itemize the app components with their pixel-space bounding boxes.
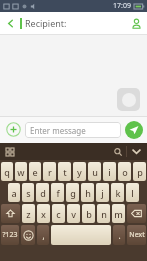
button[interactable]: z: [22, 204, 35, 223]
button[interactable]: Shift: [1, 204, 20, 223]
button[interactable]: Back: [0, 13, 20, 33]
button[interactable]: h: [81, 183, 94, 202]
staticText: x: [41, 208, 46, 220]
staticText: k: [115, 187, 121, 199]
staticText: h: [85, 187, 91, 199]
staticText: s: [26, 187, 31, 199]
button[interactable]: Recipient:: [25, 12, 125, 34]
button[interactable]: r: [43, 162, 56, 181]
button[interactable]: Add attachment: [4, 120, 23, 139]
staticText: b: [86, 208, 92, 220]
staticText: 17:09: [113, 1, 131, 11]
button[interactable]: Send: [125, 121, 143, 139]
button[interactable]: x: [37, 204, 50, 223]
button[interactable]: ?123: [1, 225, 19, 245]
button[interactable]: e: [29, 162, 41, 181]
staticText: q: [4, 166, 10, 178]
staticText: Recipient:: [25, 17, 67, 29]
button[interactable]: o: [118, 162, 131, 181]
button[interactable]: y: [73, 162, 86, 181]
staticText: u: [92, 166, 98, 178]
staticText: d: [40, 187, 46, 199]
button[interactable]: k: [111, 183, 124, 202]
button[interactable]: [117, 88, 140, 111]
button[interactable]: Emoji: [21, 225, 35, 245]
staticText: g: [70, 187, 76, 199]
staticText: l: [131, 187, 134, 199]
staticText: ,: [42, 230, 45, 241]
button[interactable]: n: [97, 204, 110, 223]
staticText: y: [77, 166, 82, 178]
button[interactable]: c: [52, 204, 65, 223]
button[interactable]: t: [58, 162, 71, 181]
button[interactable]: Space: [51, 225, 111, 245]
staticText: a: [11, 187, 17, 199]
staticText: v: [71, 208, 76, 220]
button[interactable]: a: [8, 183, 20, 202]
staticText: m: [114, 208, 123, 220]
button[interactable]: Keyboard layout: [4, 146, 16, 158]
button[interactable]: Backspace: [127, 204, 146, 223]
staticText: Enter message: [30, 125, 86, 136]
button[interactable]: Hide keyboard: [127, 143, 145, 160]
button[interactable]: .: [113, 225, 125, 245]
staticText: j: [101, 187, 104, 199]
button[interactable]: u: [88, 162, 101, 181]
staticText: f: [56, 187, 60, 199]
staticText: e: [32, 166, 38, 178]
staticText: o: [122, 166, 128, 178]
staticText: i: [108, 166, 111, 178]
staticText: c: [56, 208, 61, 220]
button[interactable]: i: [103, 162, 116, 181]
staticText: z: [26, 208, 31, 220]
staticText: .: [118, 230, 121, 241]
button[interactable]: Enter message: [25, 122, 121, 138]
staticText: Next: [129, 230, 145, 240]
button[interactable]: ,: [37, 225, 49, 245]
staticText: w: [17, 166, 25, 178]
button[interactable]: l: [126, 183, 139, 202]
staticText: t: [63, 166, 67, 178]
button[interactable]: Next: [127, 225, 146, 245]
staticText: r: [48, 166, 52, 178]
button[interactable]: j: [96, 183, 109, 202]
button[interactable]: f: [51, 183, 64, 202]
button[interactable]: w: [15, 162, 27, 181]
staticText: n: [101, 208, 107, 220]
button[interactable]: g: [66, 183, 79, 202]
button[interactable]: v: [67, 204, 80, 223]
staticText: ?123: [2, 230, 18, 240]
button[interactable]: m: [112, 204, 125, 223]
staticText: p: [137, 166, 143, 178]
button[interactable]: Search: [110, 144, 126, 160]
button[interactable]: Choose contact: [125, 12, 147, 34]
button[interactable]: b: [82, 204, 95, 223]
button[interactable]: d: [36, 183, 49, 202]
button[interactable]: p: [133, 162, 146, 181]
button[interactable]: s: [22, 183, 34, 202]
button[interactable]: q: [1, 162, 13, 181]
